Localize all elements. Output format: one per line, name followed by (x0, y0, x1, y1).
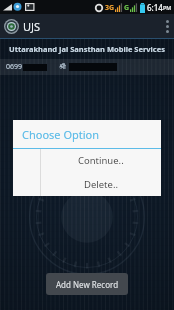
button[interactable]: Add New Record (46, 273, 128, 295)
button[interactable]: More options (160, 14, 174, 38)
button[interactable]: Delete.. (41, 172, 161, 196)
staticText: UJS (23, 19, 41, 34)
button[interactable]: 0699 (0, 59, 174, 75)
staticText: PM (163, 4, 172, 11)
staticText: Uttarakhand Jal Sansthan Mobile Services (9, 44, 165, 54)
staticText: Choose Option (22, 127, 100, 142)
button[interactable]: Continue.. (41, 149, 161, 172)
staticText: 6:14 (147, 2, 163, 13)
staticText: 3G (105, 3, 115, 13)
staticText: Add New Record (56, 279, 119, 290)
staticText: Delete.. (84, 178, 118, 191)
staticText: Continue.. (78, 154, 124, 167)
staticText: G (124, 3, 130, 13)
staticText: श्री (59, 62, 66, 72)
staticText: 0699 (6, 62, 23, 72)
